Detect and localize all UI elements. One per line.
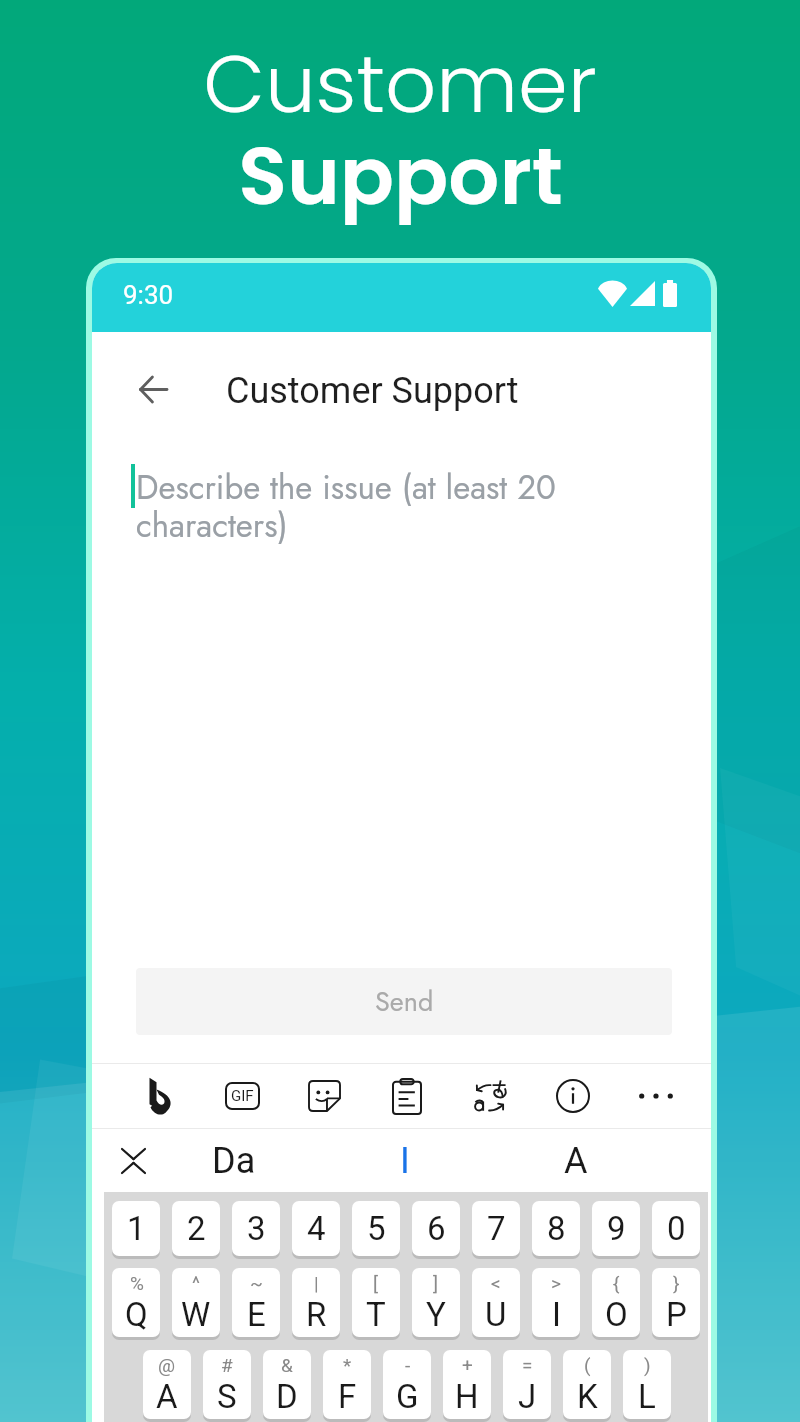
- staticText: {: [613, 1272, 620, 1294]
- button[interactable]: Stickers: [290, 1064, 358, 1128]
- button[interactable]: Clipboard: [373, 1064, 441, 1128]
- staticText: ^: [192, 1272, 200, 1294]
- staticText: &: [281, 1354, 293, 1376]
- staticText: |: [314, 1272, 319, 1294]
- staticText: Y: [426, 1295, 446, 1334]
- staticText: Support: [238, 120, 563, 232]
- staticText: <: [491, 1272, 501, 1294]
- staticText: E: [247, 1295, 266, 1334]
- staticText: I: [552, 1295, 561, 1334]
- button[interactable]: 3: [232, 1201, 280, 1256]
- staticText: #: [221, 1354, 233, 1376]
- staticText: ): [644, 1354, 651, 1376]
- button[interactable]: &: [263, 1350, 311, 1419]
- button[interactable]: }: [652, 1268, 700, 1337]
- staticText: Da: [212, 1140, 256, 1182]
- button[interactable]: 9: [592, 1201, 640, 1256]
- staticText: A: [156, 1377, 178, 1416]
- button[interactable]: Bing search: [126, 1064, 194, 1128]
- staticText: ]: [433, 1272, 439, 1294]
- staticText: U: [485, 1295, 507, 1334]
- button[interactable]: Info: [539, 1064, 607, 1128]
- button[interactable]: 2: [172, 1201, 220, 1256]
- staticText: 7: [487, 1209, 506, 1248]
- staticText: 1: [127, 1209, 146, 1248]
- button[interactable]: #: [203, 1350, 251, 1419]
- staticText: D: [276, 1377, 298, 1416]
- staticText: L: [638, 1377, 656, 1416]
- staticText: }: [673, 1272, 680, 1294]
- button[interactable]: *: [323, 1350, 371, 1419]
- staticText: 9:30: [123, 280, 174, 310]
- staticText: H: [455, 1377, 479, 1416]
- staticText: Q: [125, 1295, 148, 1334]
- staticText: Customer: [203, 28, 597, 140]
- staticText: S: [217, 1377, 237, 1416]
- staticText: @: [158, 1354, 176, 1376]
- button[interactable]: =: [503, 1350, 551, 1419]
- staticText: P: [666, 1295, 687, 1334]
- staticText: =: [522, 1354, 533, 1376]
- button[interactable]: 8: [532, 1201, 580, 1256]
- button[interactable]: %: [112, 1268, 160, 1337]
- staticText: ~: [250, 1272, 263, 1294]
- button[interactable]: More options: [622, 1064, 690, 1128]
- button[interactable]: A: [526, 1129, 626, 1192]
- staticText: T: [366, 1295, 386, 1334]
- staticText: K: [577, 1377, 598, 1416]
- button[interactable]: -: [383, 1350, 431, 1419]
- staticText: F: [338, 1377, 357, 1416]
- staticText: W: [181, 1295, 211, 1334]
- staticText: Describe the issue (at least 20 characte…: [136, 464, 556, 550]
- button[interactable]: ^: [172, 1268, 220, 1337]
- staticText: A: [564, 1140, 588, 1182]
- staticText: I: [400, 1140, 410, 1182]
- staticText: %: [130, 1272, 144, 1294]
- staticText: *: [343, 1354, 352, 1376]
- button[interactable]: Translate: [456, 1064, 524, 1128]
- staticText: GIF: [231, 1087, 254, 1105]
- staticText: (: [584, 1354, 591, 1376]
- button[interactable]: 1: [112, 1201, 160, 1256]
- button[interactable]: GIF: [208, 1064, 276, 1128]
- button[interactable]: 0: [652, 1201, 700, 1256]
- button[interactable]: ]: [412, 1268, 460, 1337]
- staticText: [: [373, 1272, 379, 1294]
- staticText: 5: [367, 1209, 386, 1248]
- staticText: J: [518, 1377, 537, 1416]
- staticText: Send: [375, 982, 434, 1021]
- button[interactable]: {: [592, 1268, 640, 1337]
- staticText: 4: [307, 1209, 326, 1248]
- staticText: +: [462, 1354, 473, 1376]
- button[interactable]: Collapse keyboard: [93, 1129, 173, 1192]
- button[interactable]: 5: [352, 1201, 400, 1256]
- button[interactable]: Send: [136, 968, 672, 1035]
- staticText: O: [605, 1295, 628, 1334]
- button[interactable]: >: [532, 1268, 580, 1337]
- staticText: 3: [247, 1209, 266, 1248]
- staticText: 9: [607, 1209, 626, 1248]
- staticText: 0: [667, 1209, 686, 1248]
- button[interactable]: <: [472, 1268, 520, 1337]
- button[interactable]: 6: [412, 1201, 460, 1256]
- button[interactable]: (: [563, 1350, 611, 1419]
- staticText: 8: [547, 1209, 566, 1248]
- button[interactable]: ): [623, 1350, 671, 1419]
- staticText: R: [306, 1295, 327, 1334]
- button[interactable]: 7: [472, 1201, 520, 1256]
- staticText: -: [405, 1354, 411, 1376]
- staticText: Customer Support: [226, 370, 519, 412]
- button[interactable]: |: [292, 1268, 340, 1337]
- staticText: 2: [187, 1209, 206, 1248]
- button[interactable]: +: [443, 1350, 491, 1419]
- button[interactable]: I: [355, 1129, 455, 1192]
- button[interactable]: Back: [129, 365, 177, 413]
- button[interactable]: ~: [232, 1268, 280, 1337]
- button[interactable]: @: [143, 1350, 191, 1419]
- button[interactable]: [: [352, 1268, 400, 1337]
- button[interactable]: 4: [292, 1201, 340, 1256]
- staticText: G: [396, 1377, 419, 1416]
- button[interactable]: Da: [184, 1129, 284, 1192]
- staticText: 6: [427, 1209, 446, 1248]
- staticText: >: [551, 1272, 561, 1294]
